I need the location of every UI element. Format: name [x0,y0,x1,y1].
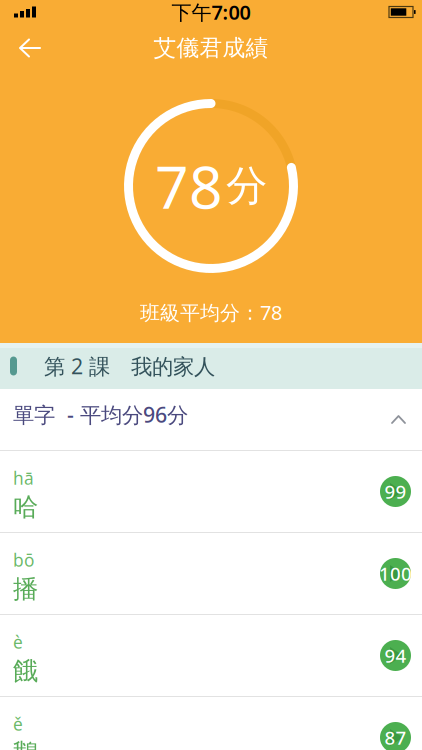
button[interactable]: hā [0,451,422,533]
staticText: 哈 [13,491,38,523]
staticText: 下午7:00 [171,0,250,25]
staticText: è [13,630,23,653]
staticText: 94 [384,643,406,668]
staticText: 99 [384,479,406,504]
staticText: 分 [226,161,267,211]
staticText: 78 [155,147,223,225]
button[interactable]: 單字 - 平均分96分 [0,389,422,450]
staticText: 餓 [13,655,38,687]
button[interactable]: bō [0,533,422,615]
staticText: 艾儀君成績 [153,34,268,62]
staticText: 單字 - 平均分96分 [13,400,188,429]
button[interactable]: ě [0,697,422,750]
staticText: 87 [384,725,406,750]
button[interactable]: è [0,615,422,697]
staticText: 班級平均分：78 [140,299,282,326]
staticText: hā [13,466,34,489]
staticText: bō [13,548,34,571]
staticText: 第 2 課 我的家人 [44,352,215,380]
staticText: ě [13,712,23,735]
button[interactable]: Back [0,25,41,70]
staticText: 鵝 [13,737,38,750]
staticText: 100 [379,561,412,586]
staticText: 播 [13,573,38,605]
